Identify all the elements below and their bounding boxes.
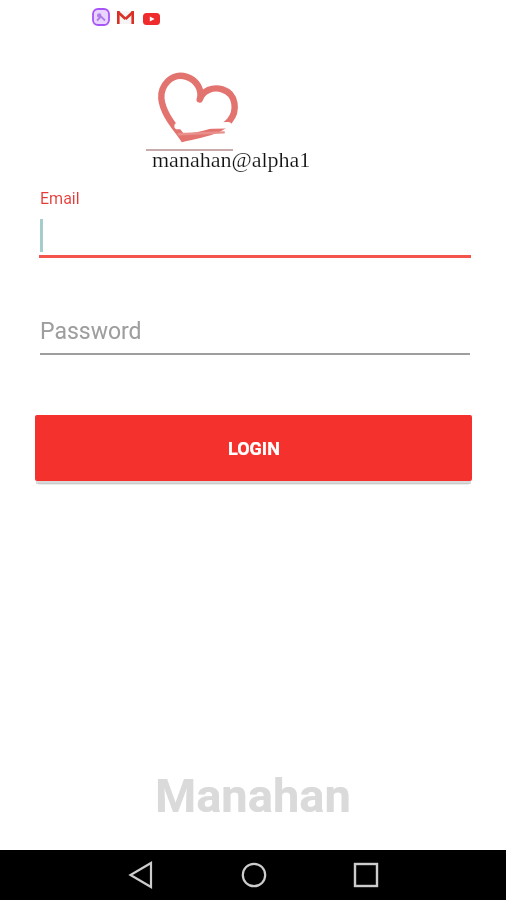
button[interactable] <box>39 210 471 258</box>
staticText: LOGIN <box>228 438 280 459</box>
staticText: Password <box>40 318 142 345</box>
button[interactable]: LOGIN <box>35 415 472 481</box>
button[interactable] <box>346 850 386 900</box>
button[interactable] <box>121 850 161 900</box>
staticText: manahan@alpha1 <box>152 147 311 171</box>
button[interactable] <box>39 312 471 355</box>
staticText: Email <box>40 189 80 208</box>
staticText: Manahan <box>155 768 351 823</box>
button[interactable] <box>234 850 274 900</box>
